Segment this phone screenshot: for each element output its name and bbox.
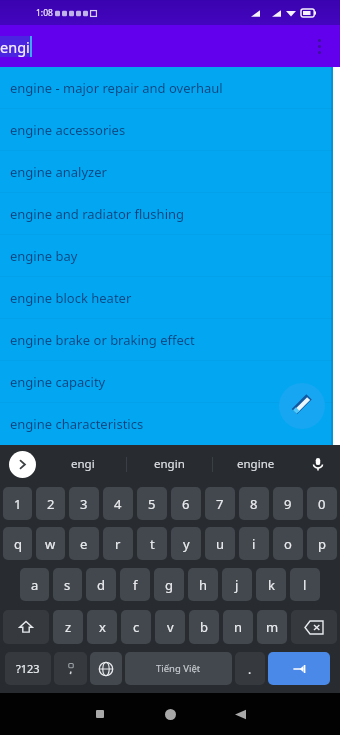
- staticText: engine block heater: [10, 289, 132, 307]
- staticText: k: [268, 576, 275, 594]
- button[interactable]: c: [121, 610, 151, 644]
- button[interactable]: s: [53, 568, 82, 601]
- button[interactable]: 6: [171, 487, 201, 520]
- button[interactable]: Tiếng Việt: [125, 652, 232, 685]
- staticText: z: [65, 618, 72, 636]
- staticText: p: [318, 535, 326, 553]
- button[interactable]: Recents: [82, 696, 118, 732]
- button[interactable]: e: [69, 527, 99, 560]
- button[interactable]: Comma: [54, 652, 87, 685]
- staticText: r: [115, 535, 121, 553]
- button[interactable]: g: [154, 568, 184, 601]
- staticText: engine - major repair and overhaul: [10, 79, 223, 97]
- button[interactable]: engine characteristics: [0, 403, 333, 445]
- button[interactable]: w: [36, 527, 65, 560]
- staticText: engine: [237, 456, 275, 472]
- button[interactable]: Shift: [3, 610, 49, 644]
- staticText: engine capacity: [10, 373, 106, 391]
- button[interactable]: a: [20, 568, 49, 601]
- button[interactable]: Change language: [90, 652, 122, 685]
- button[interactable]: f: [120, 568, 150, 601]
- staticText: engine and radiator flushing: [10, 205, 185, 223]
- button[interactable]: 2: [36, 487, 65, 520]
- staticText: e: [80, 535, 88, 553]
- button[interactable]: Home: [152, 696, 188, 732]
- button[interactable]: engine accessories: [0, 109, 333, 151]
- button[interactable]: 7: [205, 487, 235, 520]
- button[interactable]: Enter: [268, 652, 330, 685]
- button[interactable]: 3: [69, 487, 99, 520]
- staticText: y: [183, 535, 190, 553]
- button[interactable]: Backspace: [291, 610, 337, 644]
- button[interactable]: Edit: [279, 383, 325, 429]
- staticText: 2: [47, 495, 55, 513]
- button[interactable]: n: [223, 610, 253, 644]
- button[interactable]: Period: [235, 652, 265, 685]
- staticText: v: [167, 618, 174, 636]
- staticText: s: [64, 576, 71, 594]
- staticText: m: [266, 618, 279, 636]
- button[interactable]: ?123: [5, 652, 51, 685]
- staticText: 4: [114, 495, 122, 513]
- staticText: .: [248, 661, 252, 677]
- button[interactable]: 5: [137, 487, 167, 520]
- button[interactable]: 4: [103, 487, 133, 520]
- button[interactable]: z: [53, 610, 83, 644]
- staticText: engine analyzer: [10, 163, 107, 181]
- staticText: engi: [0, 37, 30, 57]
- button[interactable]: 0: [307, 487, 337, 520]
- button[interactable]: Back: [222, 696, 258, 732]
- button[interactable]: More options: [300, 27, 338, 65]
- staticText: 0: [318, 495, 326, 513]
- staticText: Tiếng Việt: [156, 662, 201, 675]
- button[interactable]: r: [103, 527, 133, 560]
- button[interactable]: engine and radiator flushing: [0, 193, 333, 235]
- button[interactable]: h: [188, 568, 218, 601]
- button[interactable]: engin: [127, 445, 212, 483]
- button[interactable]: d: [86, 568, 116, 601]
- button[interactable]: Voice input: [306, 452, 330, 476]
- staticText: 3: [80, 495, 88, 513]
- staticText: o: [284, 535, 292, 553]
- button[interactable]: engine bay: [0, 235, 333, 277]
- button[interactable]: m: [257, 610, 287, 644]
- staticText: w: [45, 535, 56, 553]
- button[interactable]: 9: [273, 487, 303, 520]
- staticText: c: [133, 618, 140, 636]
- staticText: l: [303, 576, 307, 594]
- staticText: engine accessories: [10, 121, 126, 139]
- button[interactable]: l: [290, 568, 320, 601]
- button[interactable]: t: [137, 527, 167, 560]
- button[interactable]: engine - major repair and overhaul: [0, 67, 333, 109]
- staticText: 7: [216, 495, 224, 513]
- button[interactable]: engine block heater: [0, 277, 333, 319]
- button[interactable]: engine brake or braking effect: [0, 319, 333, 361]
- button[interactable]: u: [205, 527, 235, 560]
- button[interactable]: j: [222, 568, 252, 601]
- staticText: n: [234, 618, 243, 636]
- staticText: t: [150, 535, 155, 553]
- button[interactable]: engine capacity: [0, 361, 333, 403]
- button[interactable]: k: [256, 568, 286, 601]
- staticText: engi: [71, 456, 95, 472]
- button[interactable]: o: [273, 527, 303, 560]
- button[interactable]: v: [155, 610, 185, 644]
- button[interactable]: engine: [213, 445, 298, 483]
- button[interactable]: q: [3, 527, 32, 560]
- button[interactable]: Expand toolbar: [9, 451, 36, 478]
- button[interactable]: 1: [3, 487, 32, 520]
- staticText: engine characteristics: [10, 415, 144, 433]
- button[interactable]: engine analyzer: [0, 151, 333, 193]
- button[interactable]: b: [189, 610, 219, 644]
- button[interactable]: i: [239, 527, 269, 560]
- staticText: a: [31, 576, 39, 594]
- staticText: g: [165, 576, 173, 594]
- button[interactable]: x: [87, 610, 117, 644]
- button[interactable]: p: [307, 527, 337, 560]
- button[interactable]: 8: [239, 487, 269, 520]
- staticText: f: [133, 576, 138, 594]
- staticText: 8: [250, 495, 258, 513]
- button[interactable]: engi: [40, 445, 126, 483]
- button[interactable]: y: [171, 527, 201, 560]
- staticText: engin: [154, 456, 185, 472]
